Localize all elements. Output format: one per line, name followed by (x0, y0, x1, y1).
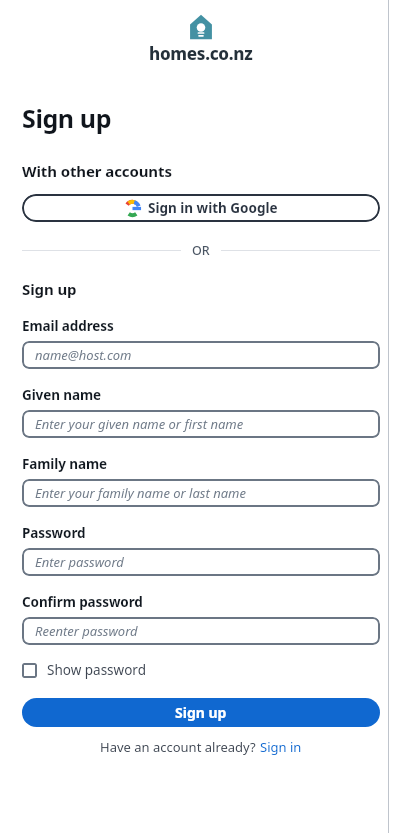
staticText: OR (192, 242, 210, 259)
staticText: Reenter password (35, 622, 138, 640)
button[interactable]: Show password (22, 661, 146, 679)
staticText: Confirm password (22, 593, 143, 611)
staticText: Sign up (22, 101, 112, 135)
staticText: Sign in (260, 738, 302, 756)
button[interactable]: Enter your family name or last name (22, 479, 380, 507)
staticText: homes.co.nz (149, 42, 253, 65)
staticText: With other accounts (22, 161, 172, 181)
button[interactable]: name@host.com (22, 341, 380, 369)
button[interactable]: Enter password (22, 548, 380, 576)
button[interactable]: Sign in with Google (22, 194, 380, 222)
staticText: Sign up (22, 279, 77, 299)
staticText: Enter password (35, 553, 124, 571)
staticText: Show password (47, 661, 146, 679)
staticText: Password (22, 524, 86, 542)
staticText: Enter your given name or first name (35, 415, 244, 433)
staticText: Family name (22, 455, 107, 473)
button[interactable]: Reenter password (22, 617, 380, 645)
staticText: Given name (22, 386, 101, 404)
staticText: Sign in with Google (148, 199, 278, 217)
staticText: name@host.com (35, 346, 132, 364)
staticText: Have an account already? (100, 738, 260, 756)
staticText: Sign up (175, 703, 227, 722)
button[interactable]: Sign up (22, 698, 380, 727)
staticText: Email address (22, 317, 114, 335)
button[interactable]: Sign in (260, 738, 302, 756)
staticText: Enter your family name or last name (35, 484, 246, 502)
button[interactable]: Enter your given name or first name (22, 410, 380, 438)
